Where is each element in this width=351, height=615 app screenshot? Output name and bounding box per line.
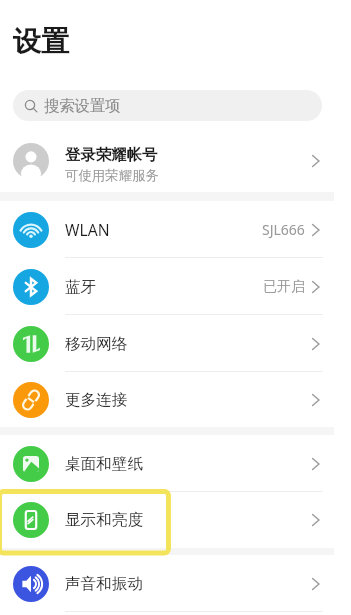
staticText: 设置 xyxy=(13,24,69,59)
staticText: SJL666 xyxy=(262,220,305,239)
staticText: 登录荣耀帐号 xyxy=(65,145,158,164)
staticText: 搜索设置项 xyxy=(44,96,121,115)
button[interactable]: 搜索设置项 xyxy=(13,90,322,121)
button[interactable]: 登录荣耀帐号 xyxy=(0,130,334,192)
button[interactable]: 蓝牙 xyxy=(0,258,334,315)
button[interactable]: 显示和亮度 xyxy=(0,492,334,548)
staticText: 蓝牙 xyxy=(65,277,263,297)
staticText: 桌面和壁纸 xyxy=(65,454,311,474)
staticText: WLAN xyxy=(65,219,262,240)
button[interactable]: 移动网络 xyxy=(0,315,334,372)
staticText: 已开启 xyxy=(263,278,305,296)
button[interactable]: 桌面和壁纸 xyxy=(0,435,334,492)
staticText: 更多连接 xyxy=(65,390,311,410)
button[interactable]: 声音和振动 xyxy=(0,555,334,612)
button[interactable]: WLAN xyxy=(0,201,334,258)
staticText: 显示和亮度 xyxy=(65,510,311,530)
staticText: 移动网络 xyxy=(65,334,311,354)
staticText: 可使用荣耀服务 xyxy=(65,167,159,184)
button[interactable]: 更多连接 xyxy=(0,372,334,427)
staticText: 声音和振动 xyxy=(65,574,311,594)
